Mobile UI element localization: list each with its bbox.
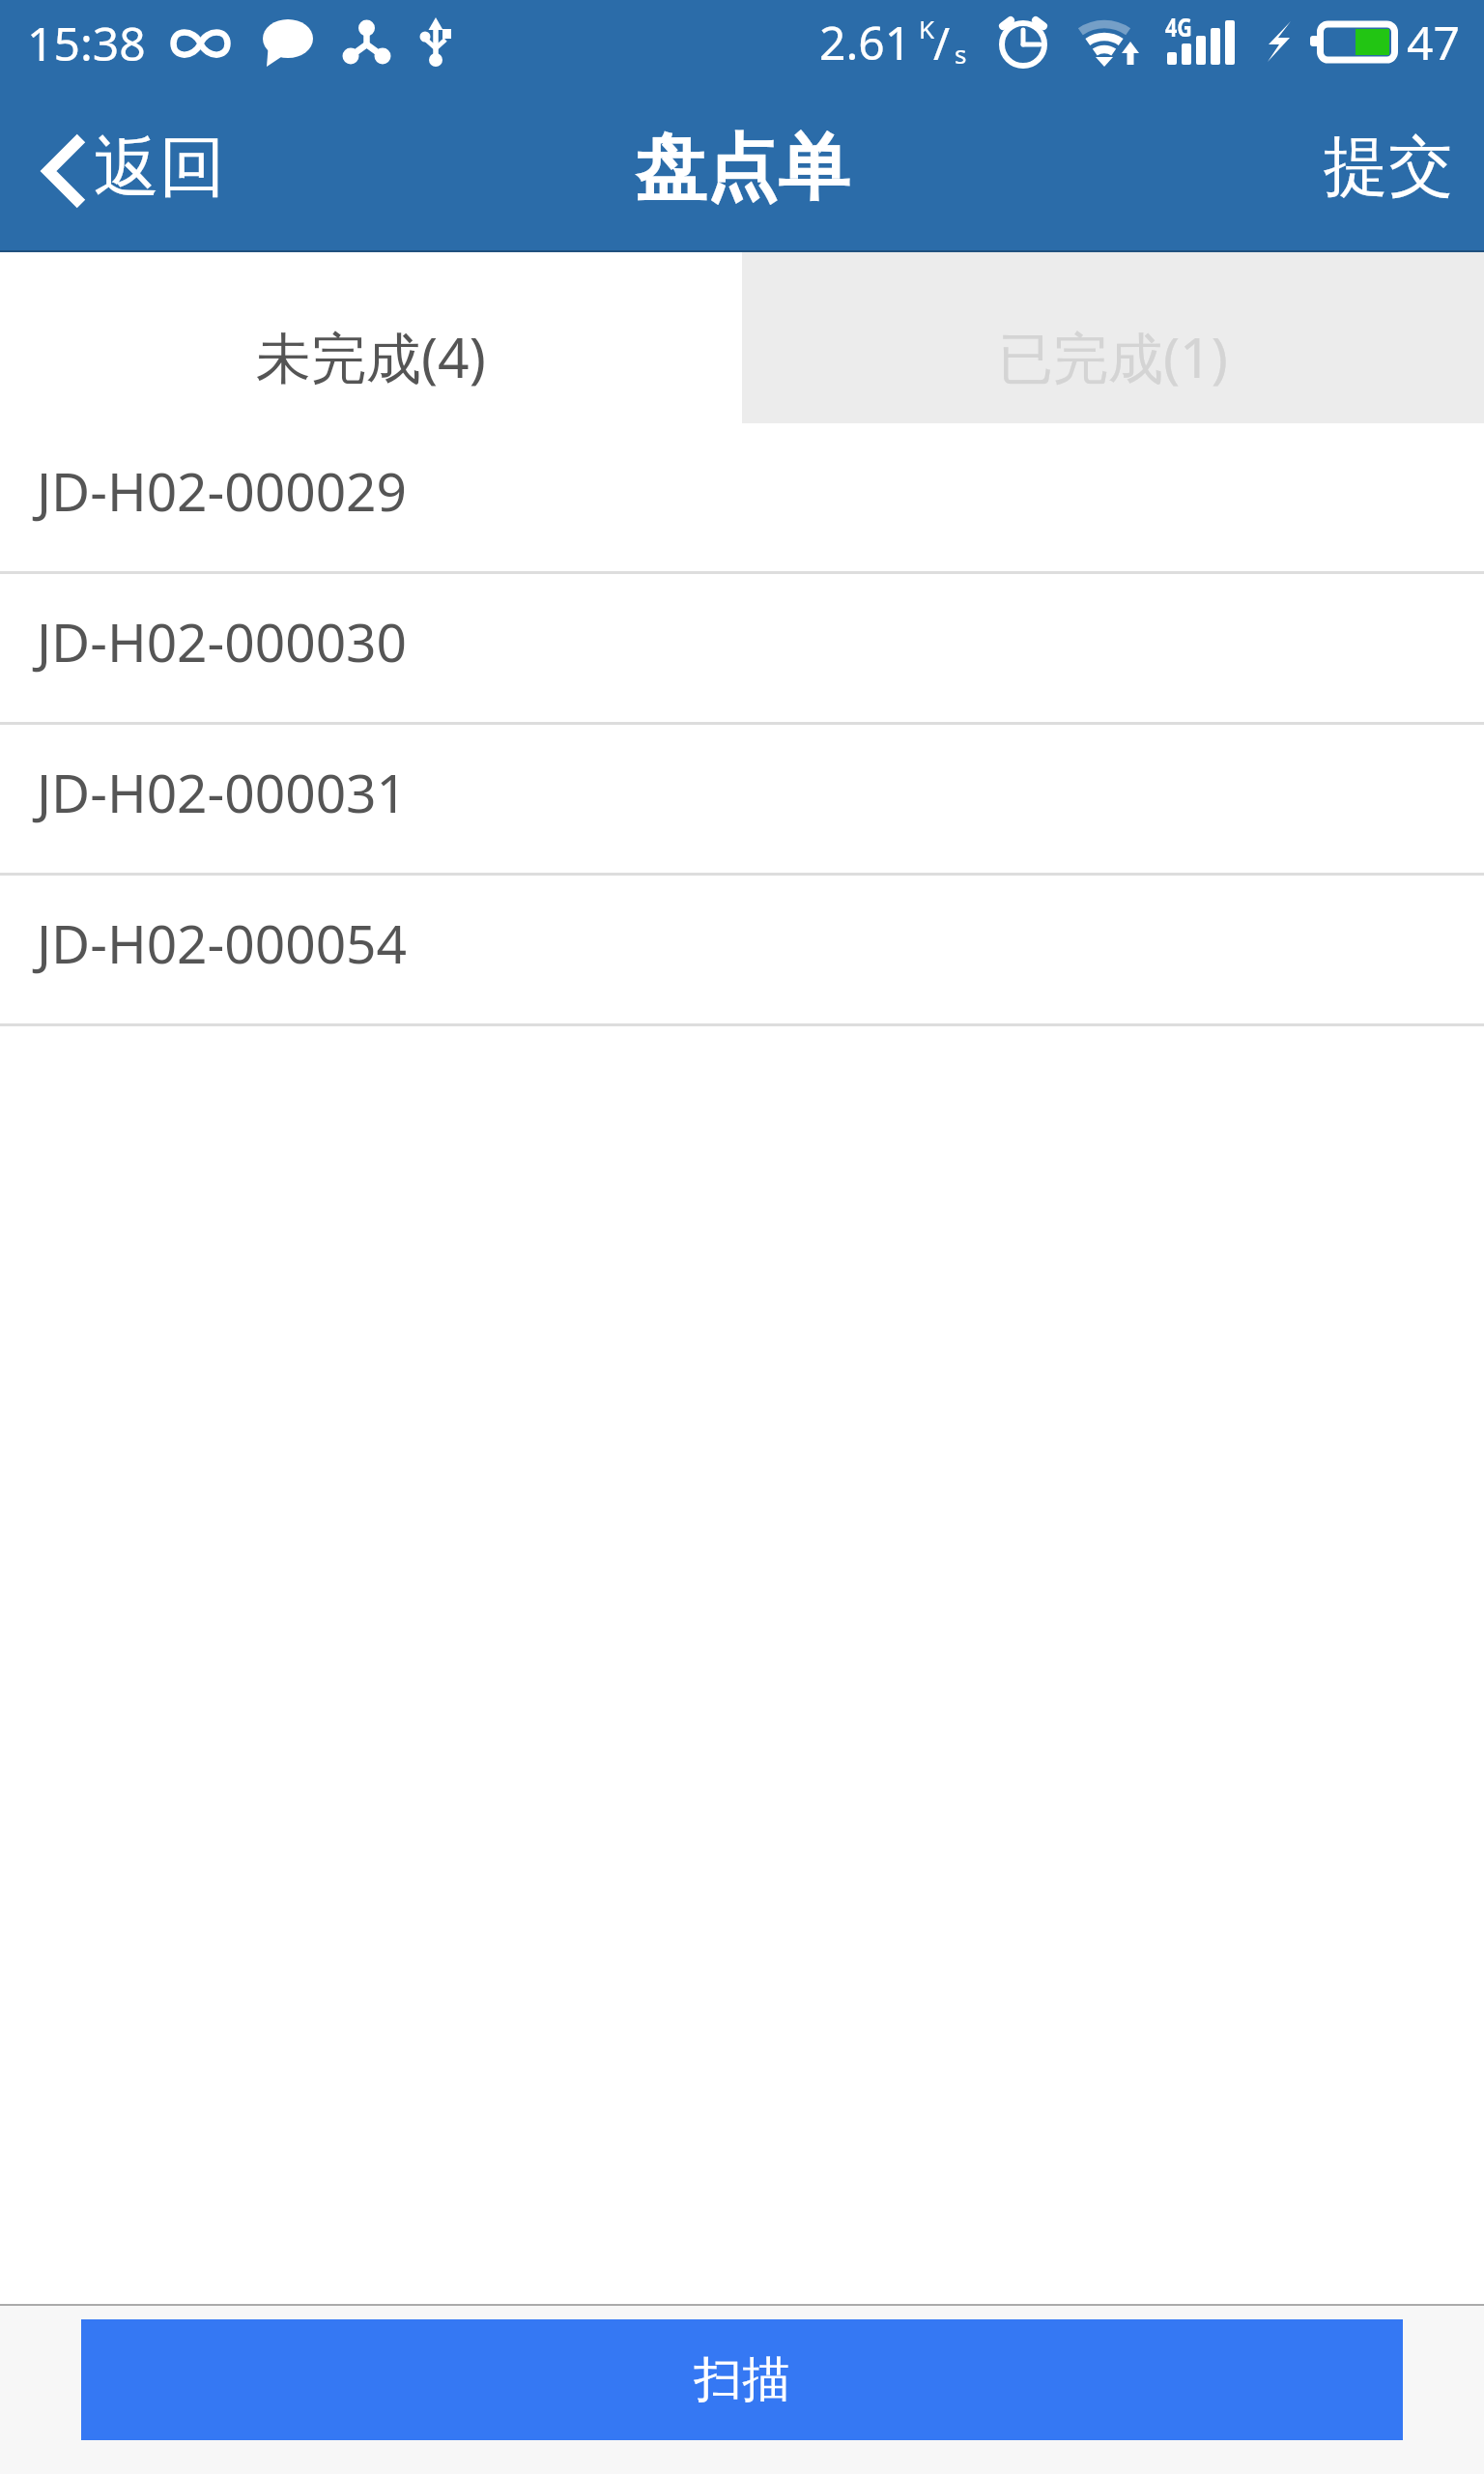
staticText: 返回 <box>94 127 225 210</box>
button[interactable]: 已完成(1) <box>742 252 1484 423</box>
button[interactable]: JD-H02-000031 <box>0 725 1484 876</box>
button[interactable]: JD-H02-000054 <box>0 876 1484 1026</box>
staticText: 已完成(1) <box>998 319 1228 394</box>
staticText: JD-H02-000029 <box>37 454 408 527</box>
button[interactable]: 提交 <box>1297 113 1484 229</box>
staticText: 15:38 <box>27 12 146 74</box>
button[interactable]: JD-H02-000030 <box>0 574 1484 725</box>
staticText: 4G <box>1165 10 1192 43</box>
staticText: s <box>955 37 967 71</box>
staticText: 未完成(4) <box>256 319 486 394</box>
staticText: JD-H02-000030 <box>37 605 408 677</box>
staticText: 提交 <box>1324 126 1453 207</box>
button[interactable]: 扫描 <box>81 2319 1403 2440</box>
staticText: K <box>919 12 935 45</box>
staticText: 盘点单 <box>635 124 849 214</box>
staticText: JD-H02-000054 <box>37 906 408 979</box>
staticText: 47 <box>1407 11 1460 73</box>
button[interactable]: 返回 <box>0 112 242 230</box>
staticText: 2.61 <box>819 11 912 73</box>
staticText: / <box>933 13 951 73</box>
button[interactable]: JD-H02-000029 <box>0 423 1484 574</box>
staticText: 扫描 <box>694 2349 790 2410</box>
button[interactable]: 未完成(4) <box>0 252 742 423</box>
staticText: JD-H02-000031 <box>37 756 408 828</box>
